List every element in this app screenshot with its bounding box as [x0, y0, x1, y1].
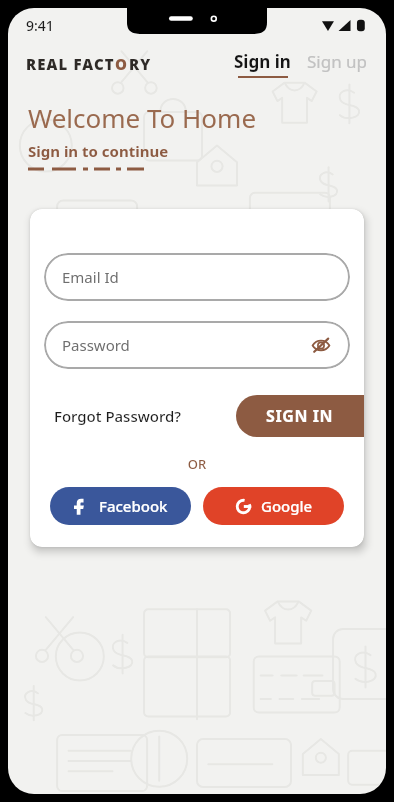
staticText: O — [115, 54, 129, 74]
button[interactable]: Password — [44, 321, 350, 369]
staticText: Welcome To Home — [28, 100, 257, 135]
staticText: Password — [62, 335, 130, 355]
button[interactable]: Facebook — [50, 487, 191, 525]
button[interactable]: Sign up — [307, 50, 368, 78]
staticText: RY — [129, 54, 152, 74]
staticText: Facebook — [99, 496, 168, 516]
button[interactable]: Google — [203, 487, 344, 525]
staticText: Forgot Password? — [54, 406, 182, 426]
button[interactable]: Toggle password visibility — [308, 332, 334, 358]
staticText: Email Id — [62, 267, 119, 287]
button[interactable]: Email Id — [44, 253, 350, 301]
button[interactable]: Forgot Password? — [54, 406, 182, 426]
staticText: Sign in to continue — [28, 141, 169, 161]
staticText: SIGN IN — [266, 405, 334, 427]
staticText: REAL FACT — [26, 54, 115, 74]
staticText: Sign in — [234, 50, 291, 73]
button[interactable]: Sign in — [232, 50, 293, 78]
staticText: 9:41 — [26, 16, 54, 35]
staticText: OR — [30, 455, 364, 473]
button[interactable]: SIGN IN — [236, 395, 364, 437]
staticText: Google — [261, 496, 313, 516]
staticText: Sign up — [307, 50, 368, 73]
